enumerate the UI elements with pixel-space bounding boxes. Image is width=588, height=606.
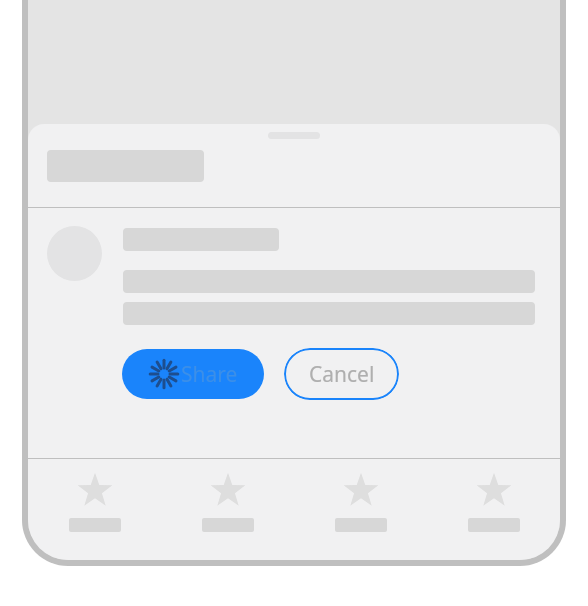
button[interactable]: Tab 3	[294, 459, 427, 560]
button[interactable]: Share	[122, 349, 264, 399]
button[interactable]: Tab 1	[28, 459, 161, 560]
staticText: Share	[181, 360, 238, 389]
button[interactable]: Tab 4	[427, 459, 560, 560]
button[interactable]: Tab 2	[161, 459, 294, 560]
button[interactable]: Cancel	[284, 348, 399, 400]
staticText: Cancel	[309, 360, 375, 389]
